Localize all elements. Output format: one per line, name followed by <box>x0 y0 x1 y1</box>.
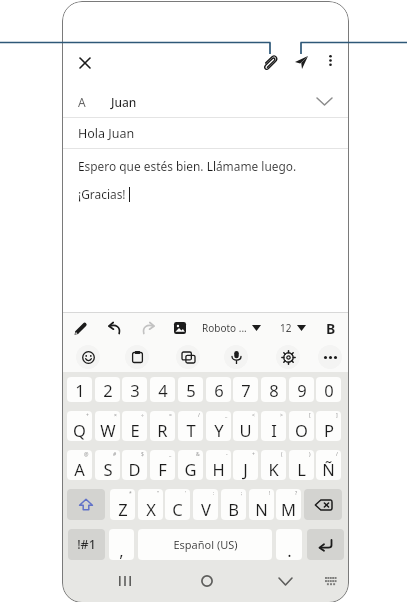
button[interactable]: 12 <box>280 313 306 343</box>
staticText: / <box>336 451 338 458</box>
button[interactable]: Español (US) <box>138 529 272 560</box>
button[interactable]: B <box>221 489 246 520</box>
button[interactable]: Ñ <box>316 450 341 480</box>
staticText: A <box>74 458 85 480</box>
staticText: > <box>280 412 283 419</box>
button[interactable]: , <box>109 529 134 560</box>
button[interactable]: O <box>289 411 314 441</box>
button[interactable]: F <box>150 450 175 480</box>
staticText: K <box>268 458 279 480</box>
button[interactable]: Home <box>194 568 220 594</box>
staticText: G <box>184 458 197 480</box>
staticText: / <box>198 412 200 419</box>
button[interactable]: 3 <box>122 377 147 402</box>
button[interactable]: 7 <box>233 377 258 402</box>
button[interactable]: Hide keyboard <box>318 568 344 594</box>
button[interactable]: Bold <box>321 313 341 343</box>
button[interactable]: 2 <box>95 377 120 402</box>
staticText: , <box>119 539 124 560</box>
button[interactable]: Send <box>287 48 315 76</box>
staticText: Q <box>73 419 86 441</box>
staticText: P <box>324 419 334 441</box>
staticText: ) <box>309 451 311 458</box>
button[interactable]: Undo <box>103 314 125 342</box>
staticText: ] <box>336 412 338 419</box>
button[interactable]: Back <box>272 568 298 594</box>
button[interactable]: V <box>193 489 218 520</box>
button[interactable]: Y <box>206 411 231 441</box>
staticText: Ñ <box>322 458 335 480</box>
button[interactable]: J <box>233 450 258 480</box>
staticText: : <box>213 490 215 497</box>
staticText: O <box>295 419 308 441</box>
staticText: Y <box>214 419 224 441</box>
button[interactable]: 1 <box>67 377 92 402</box>
button[interactable]: 4 <box>150 377 175 402</box>
button[interactable]: U <box>233 411 258 441</box>
button[interactable]: A <box>67 450 92 480</box>
button[interactable]: L <box>289 450 314 480</box>
staticText: 5 <box>186 379 196 401</box>
button[interactable]: Settings <box>276 345 300 369</box>
button[interactable]: Redo <box>137 314 159 342</box>
staticText: Español (US) <box>173 537 238 552</box>
staticText: S <box>103 458 113 480</box>
button[interactable]: Roboto ... <box>202 313 261 343</box>
button[interactable]: E <box>122 411 147 441</box>
button[interactable]: N <box>249 489 274 520</box>
staticText: # <box>113 451 117 458</box>
button[interactable]: X <box>138 489 163 520</box>
button[interactable]: Clipboard <box>125 345 149 369</box>
button[interactable]: Recents <box>112 568 138 594</box>
button[interactable]: 9 <box>289 377 314 402</box>
button[interactable]: Emoji <box>76 345 100 369</box>
button[interactable]: A <box>78 86 337 117</box>
button[interactable]: 6 <box>206 377 231 402</box>
button[interactable]: Insert image <box>169 314 191 342</box>
button[interactable]: P <box>316 411 341 441</box>
staticText: " <box>157 490 160 497</box>
staticText: Z <box>118 498 128 520</box>
button[interactable]: Z <box>110 489 135 520</box>
button[interactable]: Attach <box>256 49 284 77</box>
staticText: F <box>158 458 167 480</box>
button[interactable]: More options <box>318 48 342 72</box>
button[interactable]: K <box>261 450 286 480</box>
button[interactable]: . <box>276 529 302 560</box>
staticText: !#1 <box>77 536 96 553</box>
button[interactable]: D <box>122 450 147 480</box>
button[interactable]: R <box>150 411 175 441</box>
button[interactable]: 0 <box>316 377 341 402</box>
button[interactable]: G <box>178 450 203 480</box>
button[interactable]: S <box>95 450 120 480</box>
button[interactable]: Q <box>67 411 92 441</box>
button[interactable]: 5 <box>178 377 203 402</box>
button[interactable]: Voice input <box>224 345 248 369</box>
button[interactable]: Draw <box>69 314 91 342</box>
staticText: = <box>169 412 172 419</box>
staticText: N <box>255 498 268 520</box>
staticText: _ <box>169 451 172 458</box>
button[interactable]: Close <box>71 49 99 77</box>
button[interactable]: I <box>261 411 286 441</box>
staticText: ÷ <box>141 412 144 419</box>
button[interactable]: !#1 <box>68 529 105 560</box>
button[interactable] <box>307 529 344 560</box>
button[interactable]: T <box>178 411 203 441</box>
staticText: - <box>226 451 228 458</box>
button[interactable]: M <box>276 489 301 520</box>
button[interactable] <box>67 489 105 520</box>
button[interactable]: Stickers <box>176 345 200 369</box>
staticText: U <box>239 419 252 441</box>
button[interactable]: H <box>206 450 231 480</box>
staticText: R <box>157 419 168 441</box>
staticText: 9 <box>297 379 307 401</box>
button[interactable]: W <box>95 411 120 441</box>
button[interactable]: More <box>318 345 342 369</box>
button[interactable]: C <box>165 489 190 520</box>
staticText: Roboto ... <box>202 321 247 335</box>
button[interactable] <box>304 489 342 520</box>
button[interactable]: Hola Juan <box>78 118 337 149</box>
staticText: + <box>252 451 255 458</box>
button[interactable]: 8 <box>261 377 286 402</box>
